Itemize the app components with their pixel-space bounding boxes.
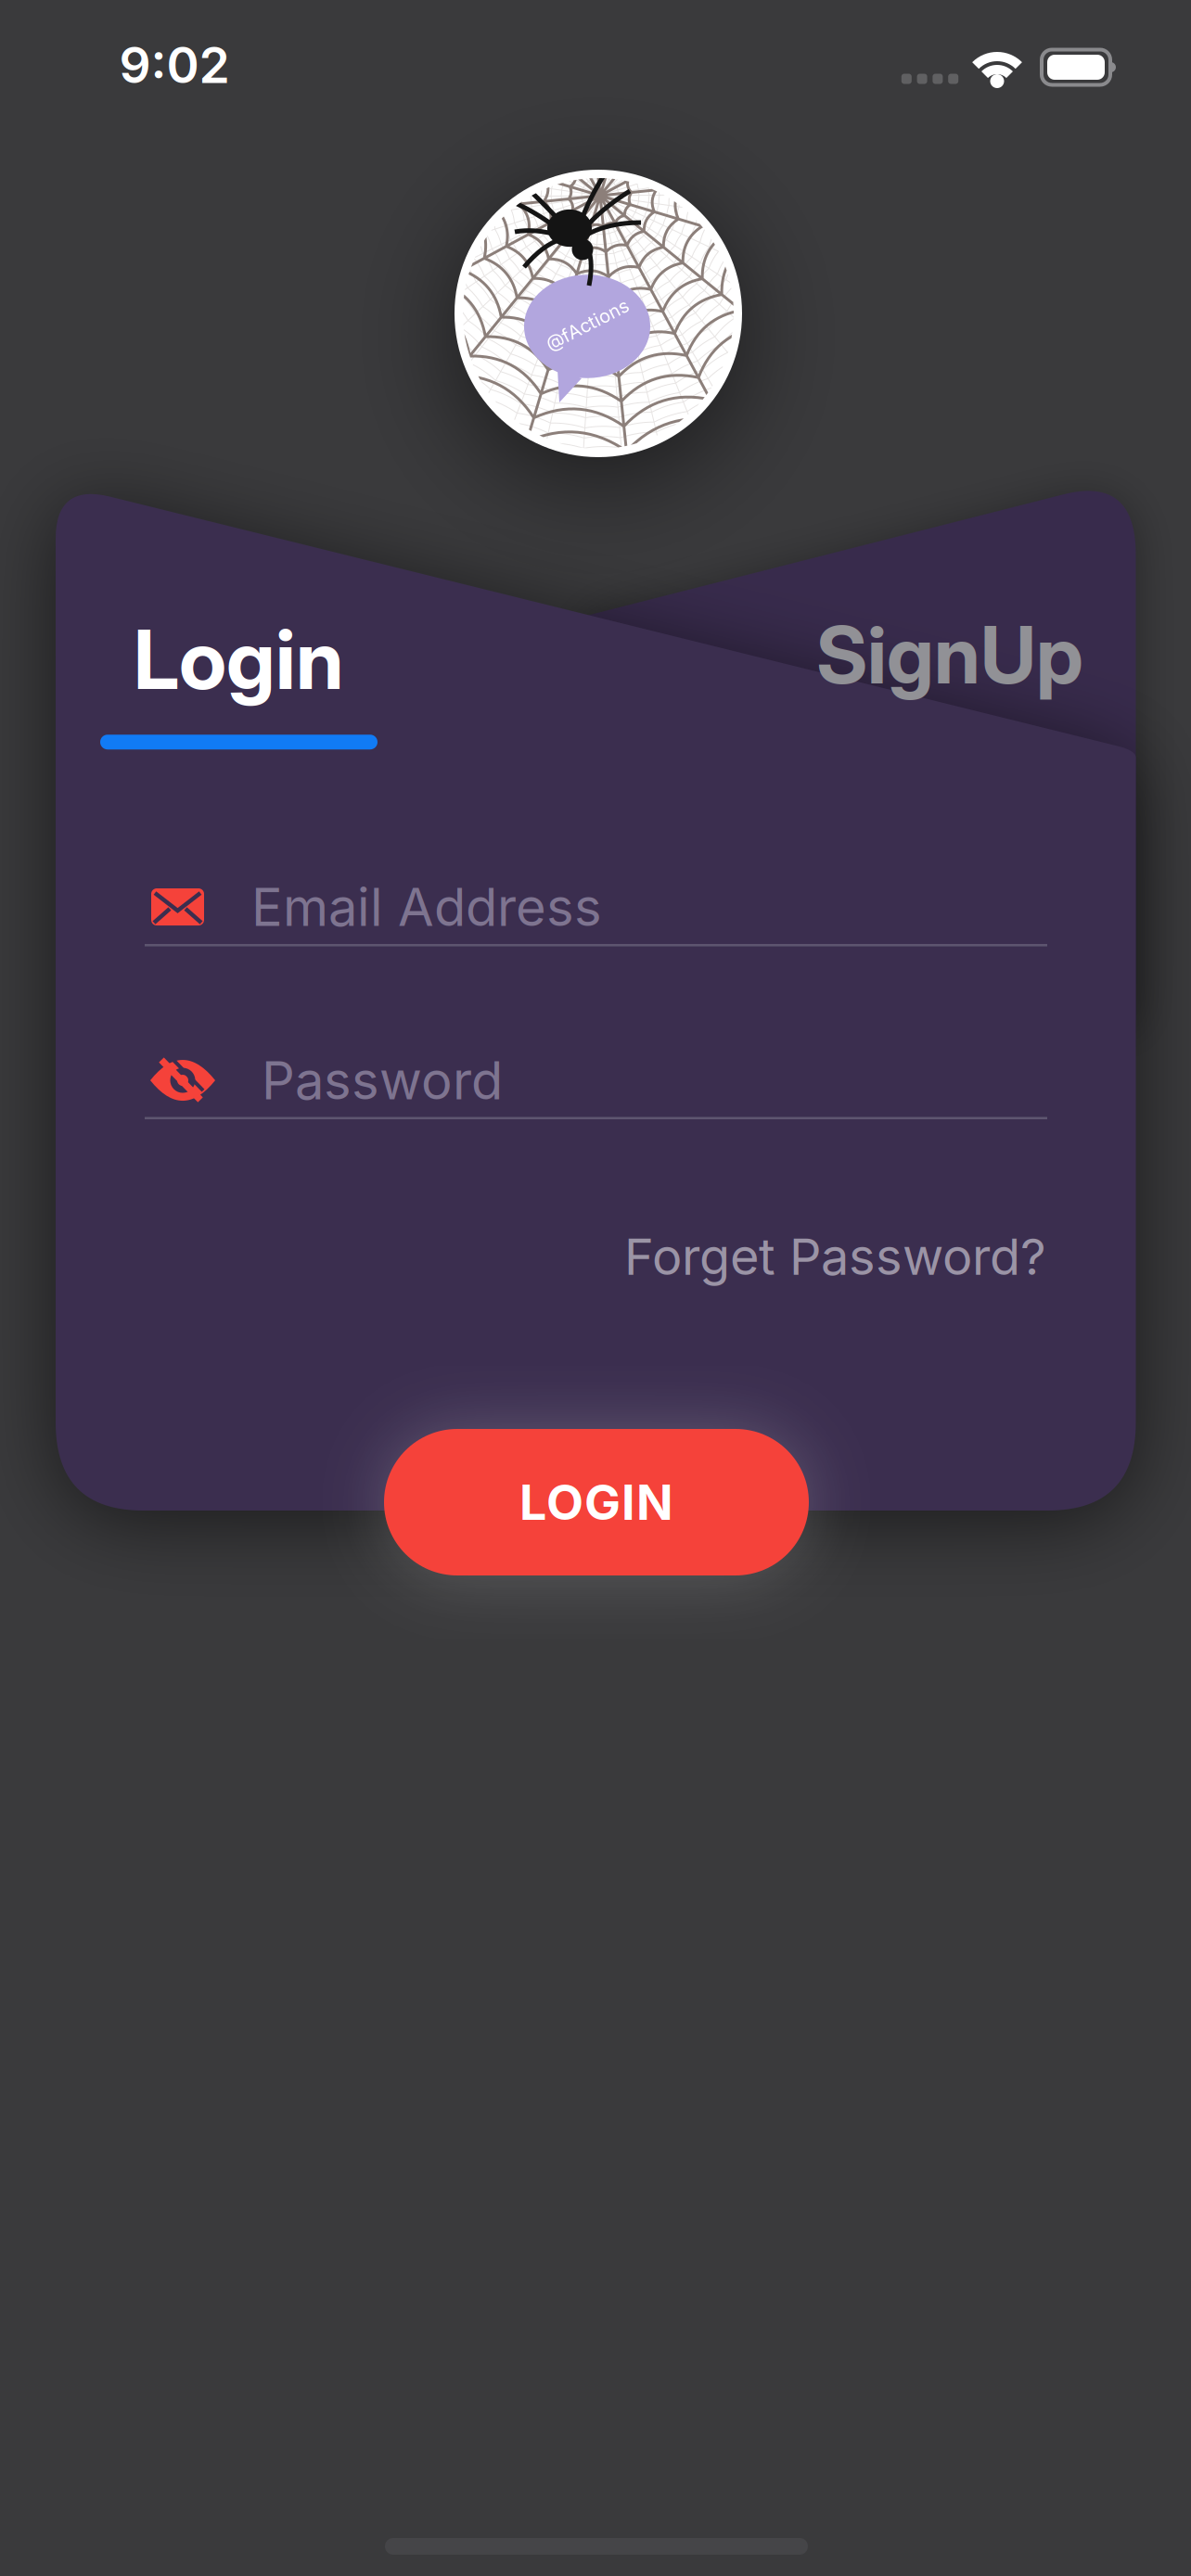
button[interactable]: Forget Password? [304, 1226, 1046, 1287]
staticText: Login [134, 610, 344, 709]
staticText: Password [262, 1049, 503, 1112]
staticText: LOGIN [519, 1473, 673, 1531]
staticText: @fActions [542, 313, 632, 336]
staticText: Email Address [251, 876, 602, 938]
staticText: 9:02 [119, 35, 230, 95]
button[interactable]: SignUp [694, 607, 1083, 702]
button[interactable]: LOGIN [384, 1429, 809, 1575]
button[interactable]: Email Address [145, 870, 1047, 946]
button[interactable]: Show password [150, 1054, 213, 1106]
staticText: SignUp [816, 607, 1083, 702]
button[interactable]: Password [145, 1044, 1047, 1119]
staticText: Forget Password? [624, 1226, 1046, 1287]
button[interactable]: Login [100, 610, 378, 750]
